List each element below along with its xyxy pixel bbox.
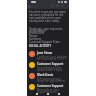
staticText: service time — [29, 31, 45, 35]
staticText: SEE ALL ACTIVITY — [29, 44, 52, 48]
button[interactable]: Back — [28, 5, 31, 8]
staticText: Your ticket has been updated with a repl… — [37, 66, 63, 72]
staticText: Recipe — [29, 34, 38, 38]
staticText: Customer Support — [37, 84, 64, 88]
button[interactable]: Customer Support — [27, 83, 69, 94]
staticText: Thank you, your request is almost done! — [29, 27, 71, 33]
staticText: Sent you a message about the appointment — [37, 77, 66, 83]
staticText: Customer Support Team — [29, 40, 60, 44]
button[interactable]: Jane Stone — [27, 50, 69, 61]
staticText: Jane Stone — [37, 51, 53, 55]
button[interactable]: Mark Davis — [27, 72, 69, 83]
staticText: Confirmed your booking for tomorrow at 1… — [37, 55, 67, 61]
staticText: Summary — [29, 37, 42, 41]
staticText: New reply on your support request — [37, 88, 60, 94]
staticText: Customer Support — [37, 62, 64, 66]
staticText: Your first in-person eye exam has been s… — [29, 10, 69, 23]
staticText: Mark Davis — [37, 73, 54, 77]
button[interactable]: Customer Support — [27, 61, 69, 72]
